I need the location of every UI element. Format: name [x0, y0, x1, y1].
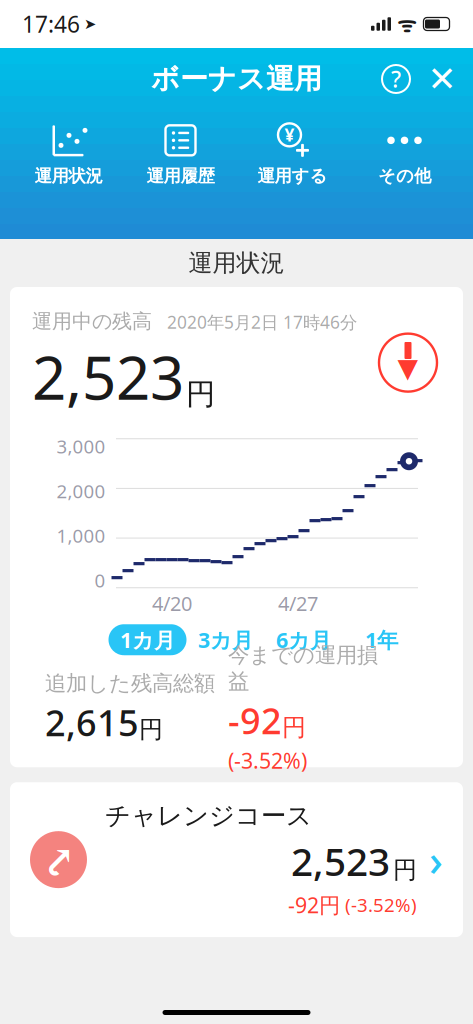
staticText: その他 [378, 165, 431, 187]
staticText: 4/27 [278, 590, 318, 617]
staticText: 円 [282, 713, 306, 742]
staticText: (-3.52%) [228, 746, 307, 774]
staticText: チャレンジコース [105, 800, 312, 831]
staticText: › [429, 831, 443, 888]
staticText: 今までの運用損益 [228, 642, 378, 694]
staticText: ¥ [284, 123, 294, 146]
staticText: ➤ [84, 16, 96, 32]
button[interactable]: 3カ月 [186, 624, 264, 655]
button[interactable]: ⤤ [10, 782, 463, 937]
staticText: 追加した残高総額 [45, 670, 215, 696]
staticText: 円 [139, 715, 163, 744]
staticText: 運用状況 [188, 248, 284, 278]
button[interactable]: ¥ [236, 115, 348, 195]
button[interactable]: ヘルプ [376, 59, 416, 99]
staticText: 1,000 [56, 523, 105, 548]
button[interactable]: その他 [348, 115, 460, 195]
staticText: 0 [94, 568, 105, 593]
button[interactable]: 運用履歴 [124, 115, 236, 195]
staticText: ? [391, 64, 401, 94]
staticText: 2,000 [56, 478, 105, 503]
staticText: 2020年5月2日 17時46分 [167, 310, 357, 333]
button[interactable]: 閉じる [422, 59, 462, 99]
staticText: ᯤ [397, 10, 416, 38]
button[interactable]: 1年 [342, 624, 420, 655]
button[interactable]: 運用状況 [12, 115, 124, 195]
staticText: (-3.52%) [340, 892, 417, 917]
staticText: 運用中の残高 [32, 309, 152, 334]
staticText: ✕ [427, 59, 456, 99]
staticText: ▼ [397, 353, 418, 383]
staticText: 円 [393, 855, 417, 885]
staticText: 3カ月 [198, 626, 253, 654]
staticText: ボーナス運用 [151, 62, 322, 96]
staticText: 1カ月 [120, 626, 175, 654]
button[interactable]: 残高を引き出す [375, 330, 441, 396]
button[interactable]: 6カ月 [264, 624, 342, 655]
staticText: 1年 [365, 626, 398, 654]
button[interactable]: 1カ月 [108, 624, 186, 655]
staticText: 3,000 [56, 434, 105, 459]
staticText: -92 [228, 696, 282, 744]
staticText: 4/20 [152, 590, 192, 617]
staticText: 17:46 [22, 9, 80, 39]
staticText: 運用履歴 [146, 165, 214, 187]
staticText: ⤤ [41, 837, 75, 882]
staticText: 2,615 [45, 698, 139, 746]
staticText: 6カ月 [276, 626, 331, 654]
staticText: 運用する [257, 165, 327, 187]
staticText: 円 [186, 376, 215, 412]
staticText: 運用状況 [34, 165, 102, 187]
staticText: -92円 [288, 891, 340, 919]
staticText: 2,523 [32, 337, 184, 416]
staticText: 2,523 [291, 835, 390, 887]
